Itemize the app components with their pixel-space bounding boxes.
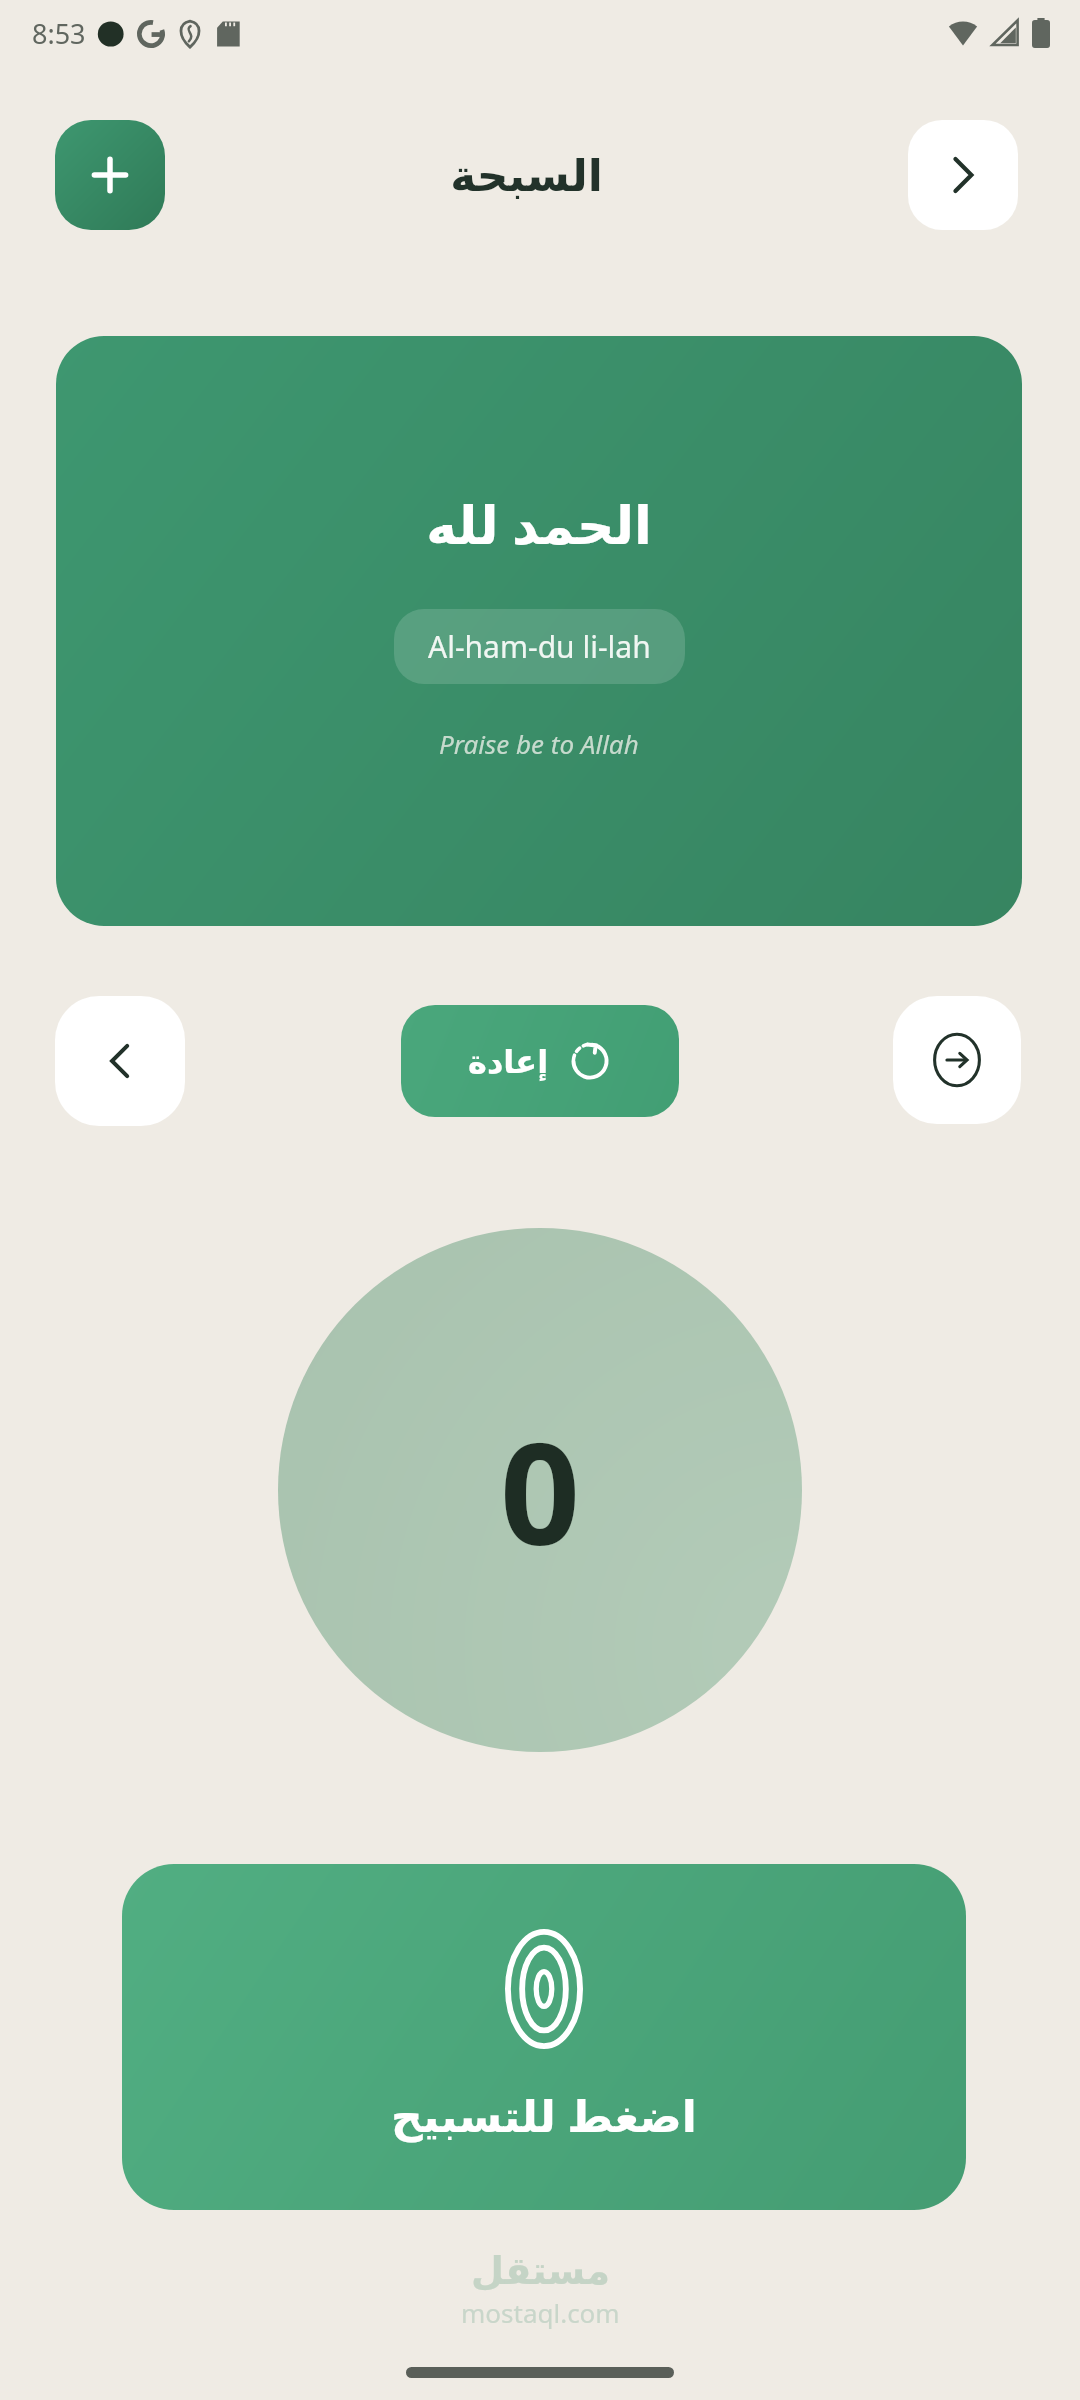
button[interactable]: Next dhikr (893, 996, 1021, 1124)
button[interactable]: Previous dhikr (55, 996, 185, 1126)
staticText: 0 (500, 1395, 581, 1586)
button[interactable]: اضغط للتسبيح (122, 1864, 966, 2210)
staticText: السبحة (450, 150, 603, 201)
staticText: Praise be to Allah (439, 726, 639, 761)
button[interactable]: إعادة (401, 1005, 679, 1117)
staticText: اضغط للتسبيح (391, 2085, 697, 2145)
staticText: Al-ham-du li-lah (428, 626, 651, 667)
button[interactable]: الحمد لله (56, 336, 1022, 926)
staticText: إعادة (468, 1043, 549, 1080)
staticText: الحمد لله (426, 488, 652, 559)
staticText: 8:53 (32, 15, 86, 52)
button[interactable]: Next (908, 120, 1018, 230)
button[interactable]: 0 (278, 1228, 802, 1752)
button[interactable]: Add (55, 120, 165, 230)
staticText: mostaql.com (461, 2295, 620, 2330)
staticText: مستقل (471, 2249, 610, 2293)
